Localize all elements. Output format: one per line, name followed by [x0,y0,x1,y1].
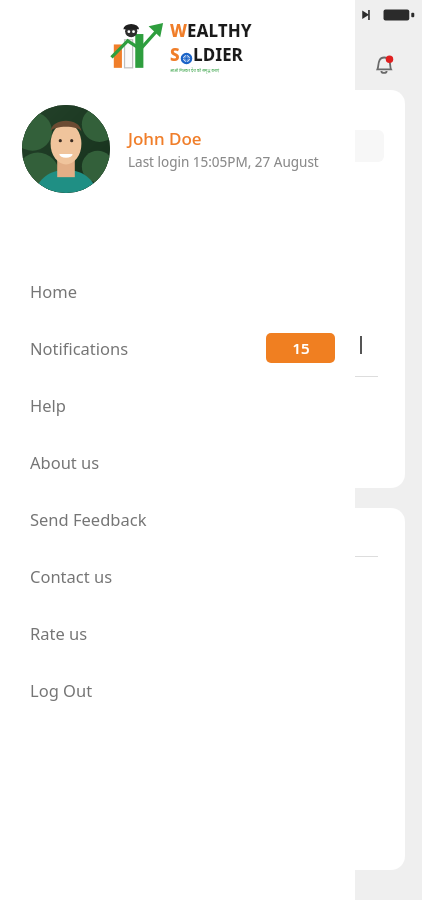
staticText: EALTHY [187,19,252,42]
button[interactable]: Profile photo [0,88,355,210]
staticText: W [170,19,187,42]
staticText: Last login 15:05PM, 27 August [128,153,319,171]
button[interactable]: Contact us [0,547,355,604]
staticText: Help [30,394,66,416]
staticText: आओ मिलकर देश को समृद्ध बनाएं [170,68,220,73]
button[interactable]: About us [0,433,355,490]
button[interactable]: Rate us [0,604,355,661]
button[interactable]: Send Feedback [0,490,355,547]
button[interactable]: Log Out [0,661,355,718]
staticText: John Doe [128,127,202,150]
button[interactable]: 15 [266,333,335,363]
button[interactable]: Help [0,376,355,433]
staticText: S [170,43,180,66]
staticText: About us [30,451,100,473]
staticText: Contact us [30,565,113,587]
staticText: Home [30,280,77,302]
staticText: LDIER [193,43,243,66]
staticText: Log Out [30,679,93,701]
staticText: Send Feedback [30,508,147,530]
staticText: Notifications [30,337,129,359]
button[interactable]: Notifications [366,47,402,83]
button[interactable]: Home [0,262,355,319]
button[interactable]: Notifications [0,319,355,376]
button[interactable]: Profile photo [22,105,110,193]
staticText: 15 [292,338,310,358]
staticText: Rate us [30,622,88,644]
